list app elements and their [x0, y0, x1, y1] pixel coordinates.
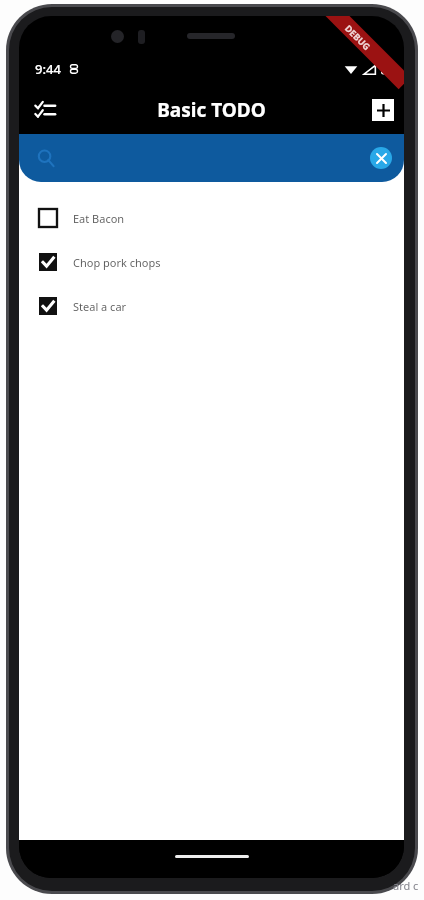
button[interactable]: Search — [19, 134, 404, 182]
staticText: Chop pork chops — [73, 255, 161, 270]
button[interactable]: Chop pork chops — [19, 240, 404, 284]
staticText: ard c — [393, 878, 419, 893]
staticText: Basic TODO — [157, 97, 266, 123]
button[interactable]: Menu — [25, 90, 65, 130]
button[interactable]: Steal a car — [19, 284, 404, 328]
button[interactable]: Add task — [372, 99, 394, 121]
staticText: Eat Bacon — [73, 211, 125, 226]
staticText: Steal a car — [73, 299, 127, 314]
other: Search — [31, 143, 61, 173]
button[interactable]: Eat Bacon — [19, 196, 404, 240]
staticText: 9:44 — [35, 60, 61, 78]
button[interactable]: Clear search — [370, 147, 392, 169]
staticText: DEBUG — [343, 22, 373, 52]
